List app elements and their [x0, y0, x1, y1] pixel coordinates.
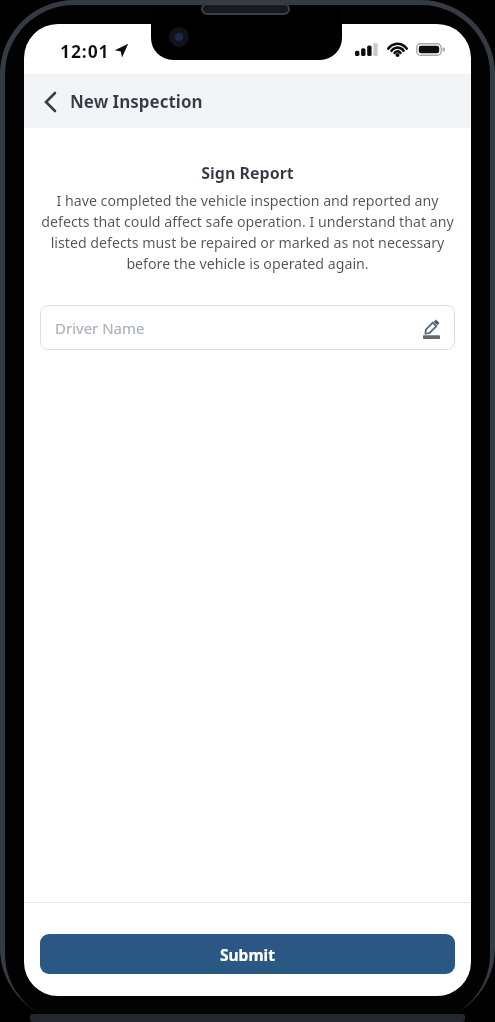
staticText: Driver Name	[55, 318, 145, 338]
staticText: Submit	[220, 944, 275, 965]
staticText: Sign Report	[24, 162, 471, 184]
staticText: New Inspection	[70, 90, 203, 113]
button[interactable]	[42, 92, 60, 110]
staticText: 12:01	[60, 39, 110, 63]
button[interactable]: Driver Name	[40, 305, 455, 350]
staticText: I have completed the vehicle inspection …	[24, 191, 471, 273]
button[interactable]: Submit	[40, 934, 455, 974]
